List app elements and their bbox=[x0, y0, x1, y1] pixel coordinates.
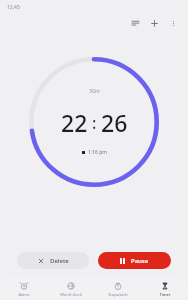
staticText: Timer bbox=[159, 292, 171, 297]
button[interactable]: Pause bbox=[98, 252, 171, 269]
button[interactable]: Sort timers bbox=[127, 15, 143, 31]
button[interactable]: Stopwatch bbox=[94, 278, 141, 300]
staticText: 26 bbox=[101, 107, 128, 138]
staticText: Delete bbox=[50, 257, 69, 265]
button[interactable]: World clock bbox=[47, 278, 94, 300]
button[interactable]: Alarm bbox=[0, 278, 47, 300]
button[interactable]: More options bbox=[165, 15, 181, 31]
staticText: Stopwatch bbox=[108, 292, 128, 297]
button[interactable]: Add timer bbox=[146, 15, 162, 31]
staticText: Pause bbox=[131, 257, 149, 265]
staticText: : bbox=[92, 112, 97, 134]
staticText: 1:16 pm bbox=[88, 149, 107, 156]
staticText: 22 bbox=[61, 107, 88, 138]
staticText: World clock bbox=[60, 292, 82, 297]
button[interactable]: Delete bbox=[17, 252, 89, 269]
staticText: 12:45 bbox=[7, 4, 20, 11]
staticText: Alarm bbox=[18, 292, 30, 297]
staticText: 30m bbox=[89, 88, 100, 95]
button[interactable]: Timer bbox=[141, 278, 188, 300]
